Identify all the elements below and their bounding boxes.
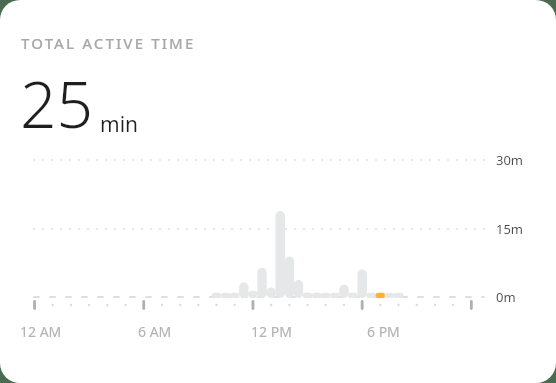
staticText: 30m bbox=[496, 151, 524, 169]
staticText: 15m bbox=[496, 220, 524, 238]
staticText: 6 PM bbox=[367, 322, 400, 341]
staticText: 6 AM bbox=[138, 322, 172, 341]
staticText: min bbox=[100, 110, 139, 139]
staticText: 0m bbox=[496, 288, 516, 306]
staticText: TOTAL ACTIVE TIME bbox=[21, 33, 196, 53]
staticText: 12 AM bbox=[20, 322, 62, 341]
staticText: 25 bbox=[20, 60, 94, 147]
button[interactable]: Total active time chart bbox=[0, 0, 556, 383]
staticText: 12 PM bbox=[251, 322, 292, 341]
